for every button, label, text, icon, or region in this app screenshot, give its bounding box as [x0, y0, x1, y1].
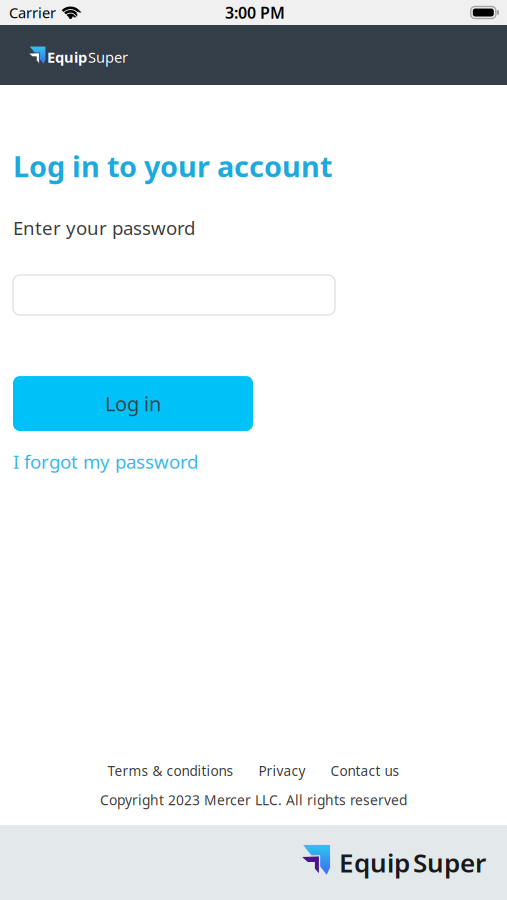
staticText: Carrier: [9, 3, 56, 22]
staticText: Super: [88, 47, 128, 67]
button[interactable]: Password: [13, 275, 335, 315]
button[interactable]: Terms & conditions: [107, 762, 233, 780]
button[interactable]: I forgot my password: [13, 449, 198, 474]
button[interactable]: Contact us: [330, 762, 399, 780]
staticText: Log in: [105, 390, 161, 417]
staticText: I forgot my password: [13, 449, 198, 474]
staticText: Log in to your account: [13, 147, 332, 185]
staticText: 3:00 PM: [225, 2, 285, 23]
staticText: Equip: [47, 47, 87, 67]
staticText: Enter your password: [13, 215, 195, 240]
button[interactable]: Privacy: [258, 762, 305, 780]
staticText: Contact us: [330, 762, 399, 780]
staticText: Equip: [339, 845, 410, 880]
staticText: Copyright 2023 Mercer LLC. All rights re…: [100, 791, 407, 809]
staticText: Super: [413, 845, 486, 880]
staticText: Terms & conditions: [107, 762, 233, 780]
staticText: Privacy: [258, 762, 305, 780]
button[interactable]: Log in: [13, 376, 253, 431]
